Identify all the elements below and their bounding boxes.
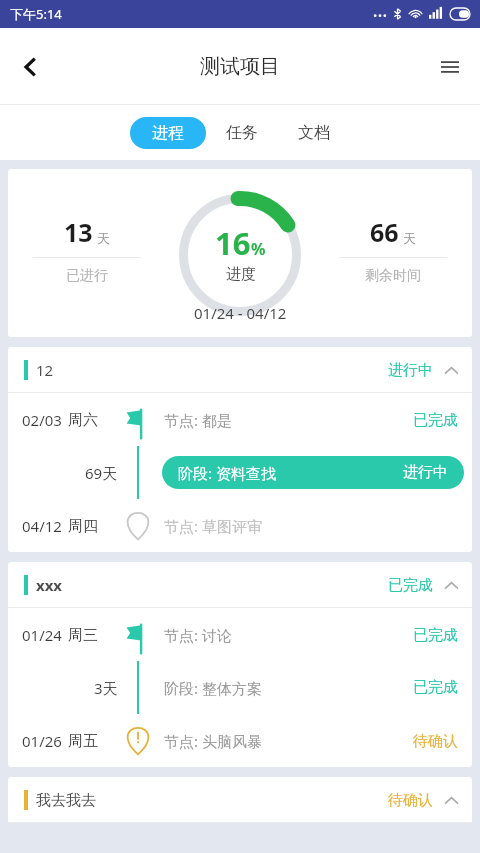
staticText: 下午5:14 — [10, 5, 62, 23]
staticText: 周四 — [68, 517, 98, 536]
staticText: 01/24 - 04/12 — [194, 303, 287, 323]
staticText: % — [251, 238, 266, 260]
button[interactable]: 我去我去 — [8, 777, 472, 823]
staticText: 进行中 — [388, 361, 433, 380]
button[interactable]: 文档 — [278, 117, 350, 149]
staticText: 测试项目 — [200, 54, 280, 79]
staticText: 天 — [403, 230, 416, 246]
staticText: 已完成 — [413, 678, 458, 697]
button[interactable]: 01/24 — [8, 608, 472, 661]
staticText: 3天 — [94, 678, 118, 698]
staticText: 周五 — [68, 732, 98, 751]
button[interactable]: 12 — [8, 347, 472, 393]
staticText: 进程 — [152, 123, 184, 143]
staticText: 进行中 — [403, 463, 448, 482]
staticText: 已完成 — [413, 626, 458, 645]
staticText: xxx — [36, 575, 63, 595]
staticText: 69天 — [85, 463, 118, 483]
staticText: 进度 — [226, 265, 256, 284]
button[interactable]: 04/12 — [8, 499, 472, 552]
button[interactable]: 13 — [8, 169, 472, 337]
staticText: 66 — [370, 215, 399, 249]
button[interactable]: 3天 — [8, 661, 472, 714]
button[interactable]: 02/03 — [8, 393, 472, 446]
staticText: 阶段: 整体方案 — [164, 678, 413, 698]
staticText: 我去我去 — [36, 791, 96, 810]
staticText: 13 — [64, 215, 93, 249]
staticText: 04/12 — [22, 516, 62, 536]
staticText: 已完成 — [388, 576, 433, 595]
button[interactable]: 01/26 — [8, 714, 472, 767]
staticText: 已完成 — [413, 411, 458, 430]
button[interactable]: Back — [8, 45, 52, 89]
staticText: 剩余时间 — [365, 267, 421, 285]
staticText: 01/26 — [22, 731, 62, 751]
staticText: 节点: 头脑风暴 — [164, 731, 413, 751]
staticText: 周六 — [68, 411, 98, 430]
staticText: 12 — [36, 360, 54, 380]
staticText: 节点: 讨论 — [164, 625, 413, 645]
staticText: 待确认 — [388, 791, 433, 810]
staticText: 天 — [97, 230, 110, 246]
staticText: 节点: 草图评审 — [164, 516, 458, 536]
button[interactable]: xxx — [8, 562, 472, 608]
staticText: 阶段: 资料查找 — [178, 463, 403, 483]
button[interactable]: Menu — [428, 45, 472, 89]
staticText: 节点: 都是 — [164, 410, 413, 430]
staticText: 任务 — [226, 123, 258, 143]
staticText: 01/24 — [22, 625, 62, 645]
staticText: 02/03 — [22, 410, 62, 430]
button[interactable]: 69天 — [8, 446, 472, 499]
staticText: 已进行 — [66, 267, 108, 285]
button[interactable]: 进程 — [130, 117, 206, 149]
staticText: 16 — [215, 222, 251, 264]
button[interactable]: 任务 — [206, 117, 278, 149]
staticText: 文档 — [298, 123, 330, 143]
staticText: 周三 — [68, 626, 98, 645]
staticText: 待确认 — [413, 732, 458, 751]
